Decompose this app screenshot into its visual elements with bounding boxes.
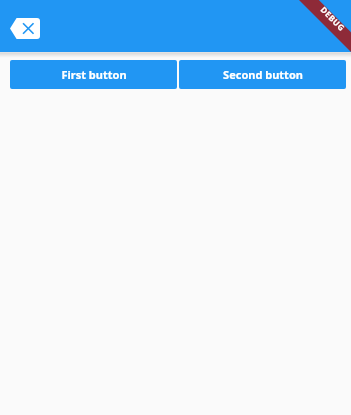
button[interactable]: Close [10, 18, 40, 39]
button[interactable]: Second button [179, 60, 346, 89]
staticText: Second button [223, 67, 303, 82]
staticText: First button [61, 67, 127, 82]
button[interactable]: First button [10, 60, 177, 89]
staticText: DEBUG [318, 4, 347, 33]
